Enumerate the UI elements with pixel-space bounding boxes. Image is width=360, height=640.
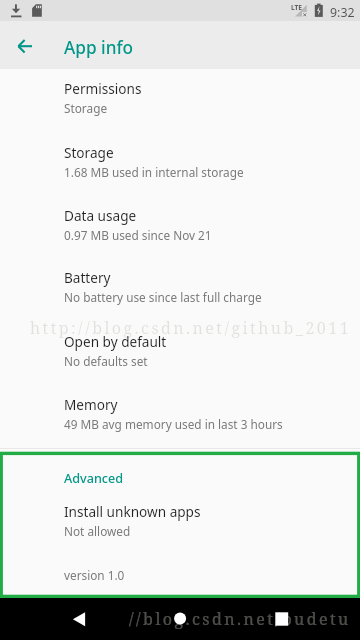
- button[interactable]: Open by default: [0, 332, 360, 379]
- button[interactable]: Home: [159, 598, 201, 640]
- button[interactable]: Data usage: [0, 206, 360, 253]
- button[interactable]: Advanced: [0, 462, 360, 488]
- button[interactable]: Storage: [0, 143, 360, 190]
- staticText: Storage: [64, 143, 114, 162]
- staticText: No defaults set: [64, 353, 148, 369]
- button[interactable]: Back: [58, 598, 100, 640]
- staticText: Memory: [64, 395, 118, 414]
- button[interactable]: Memory: [0, 395, 360, 442]
- staticText: 0.97 MB used since Nov 21: [64, 227, 212, 243]
- staticText: Permissions: [64, 79, 142, 98]
- staticText: version 1.0: [64, 567, 125, 583]
- staticText: 1.68 MB used in internal storage: [64, 164, 244, 180]
- staticText: App info: [64, 36, 134, 59]
- staticText: Install unknown apps: [64, 502, 201, 521]
- button[interactable]: Install unknown apps: [0, 502, 360, 549]
- button[interactable]: Recent apps: [261, 598, 303, 640]
- staticText: //blog.csdn.net/oudetu: [129, 608, 351, 630]
- staticText: 9:32: [330, 4, 355, 21]
- staticText: Data usage: [64, 206, 137, 225]
- staticText: LTE: [291, 3, 303, 12]
- staticText: Open by default: [64, 332, 167, 351]
- button[interactable]: Battery: [0, 268, 360, 315]
- staticText: Not allowed: [64, 523, 131, 539]
- staticText: Storage: [64, 100, 108, 116]
- button[interactable]: Back: [6, 25, 46, 65]
- staticText: Advanced: [64, 470, 124, 487]
- button[interactable]: Permissions: [0, 79, 360, 126]
- staticText: 49 MB avg memory used in last 3 hours: [64, 416, 283, 432]
- staticText: Battery: [64, 268, 111, 287]
- staticText: http://blog.csdn.net/github_2011: [30, 317, 352, 339]
- staticText: No battery use since last full charge: [64, 289, 262, 305]
